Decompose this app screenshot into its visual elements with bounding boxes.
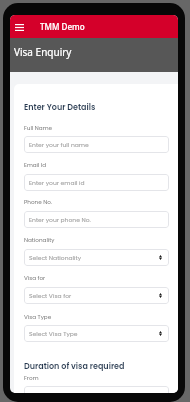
staticText: Enter your phone No. bbox=[29, 216, 162, 224]
staticText: Email Id bbox=[24, 161, 47, 169]
staticText: Select Visa for bbox=[29, 292, 159, 300]
staticText: Nationality bbox=[24, 236, 55, 244]
button[interactable]: Select Visa for bbox=[24, 287, 169, 304]
staticText: Duration of visa required bbox=[24, 361, 125, 372]
button[interactable]: Enter your email id bbox=[24, 174, 169, 191]
staticText: TMM Demo bbox=[40, 21, 85, 32]
staticText: Visa Enquiry bbox=[14, 45, 72, 59]
button[interactable]: Select Nationality bbox=[24, 249, 169, 266]
button[interactable]: Select Visa Type bbox=[24, 325, 169, 342]
button[interactable] bbox=[24, 386, 169, 393]
button[interactable]: Enter your phone No. bbox=[24, 211, 169, 228]
staticText: Phone No. bbox=[24, 198, 53, 206]
button[interactable]: Enter your full name bbox=[24, 136, 169, 153]
staticText: Enter your email id bbox=[29, 179, 162, 187]
button[interactable]: Open navigation menu bbox=[12, 19, 26, 35]
staticText: Select Nationality bbox=[29, 254, 159, 262]
staticText: Enter Your Details bbox=[24, 102, 96, 113]
staticText: Visa for bbox=[24, 274, 46, 282]
staticText: Visa Type bbox=[24, 313, 52, 321]
staticText: Select Visa Type bbox=[29, 330, 159, 338]
staticText: From bbox=[24, 374, 39, 382]
staticText: Full Name bbox=[24, 124, 53, 132]
staticText: Enter your full name bbox=[29, 141, 162, 149]
